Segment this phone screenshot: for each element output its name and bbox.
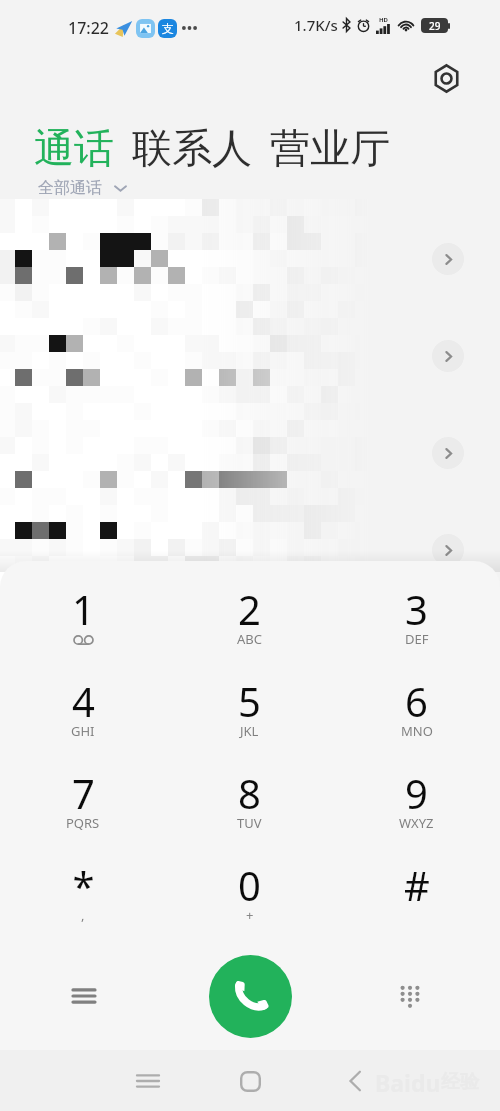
button[interactable]: Menu: [48, 960, 120, 1032]
staticText: ,: [81, 906, 85, 924]
staticText: 3: [405, 582, 428, 636]
staticText: 0: [238, 858, 261, 912]
button[interactable]: 营业厅: [270, 123, 390, 173]
button[interactable]: #: [333, 850, 500, 942]
staticText: HD: [379, 16, 388, 24]
button[interactable]: Call details: [0, 210, 500, 307]
button[interactable]: 联系人: [132, 123, 252, 173]
button[interactable]: Back: [325, 1051, 385, 1111]
staticText: 8: [238, 766, 261, 820]
staticText: 9: [405, 766, 428, 820]
staticText: 5: [238, 674, 261, 728]
staticText: 支: [162, 21, 174, 36]
button[interactable]: 5: [166, 666, 333, 758]
staticText: +: [246, 906, 254, 924]
button[interactable]: 2: [166, 574, 333, 666]
button[interactable]: Home: [220, 1051, 280, 1111]
staticText: 联系人: [132, 123, 252, 173]
staticText: 6: [405, 674, 428, 728]
staticText: 17:22: [68, 17, 109, 39]
staticText: GHI: [71, 722, 95, 740]
staticText: JKL: [240, 722, 259, 740]
button[interactable]: Call details: [0, 501, 500, 598]
button[interactable]: 1: [0, 574, 166, 666]
staticText: DEF: [405, 630, 429, 648]
staticText: WXYZ: [399, 814, 434, 832]
button[interactable]: Settings: [428, 60, 464, 96]
button[interactable]: 8: [166, 758, 333, 850]
button[interactable]: 9: [333, 758, 500, 850]
staticText: MNO: [401, 722, 433, 740]
staticText: 1.7K/s: [294, 15, 338, 35]
staticText: ABC: [237, 630, 262, 648]
button[interactable]: 3: [333, 574, 500, 666]
staticText: PQRS: [66, 814, 100, 832]
staticText: TUV: [237, 814, 262, 832]
staticText: 全部通话: [38, 178, 102, 198]
staticText: *: [72, 858, 95, 912]
button[interactable]: 4: [0, 666, 166, 758]
staticText: 7: [72, 766, 95, 820]
staticText: 2: [238, 582, 261, 636]
button[interactable]: 7: [0, 758, 166, 850]
button[interactable]: Keypad: [374, 960, 446, 1032]
button[interactable]: Call details: [0, 307, 500, 404]
button[interactable]: Call details: [0, 404, 500, 501]
staticText: 4: [72, 674, 95, 728]
staticText: 通话: [34, 123, 114, 173]
button[interactable]: 6: [333, 666, 500, 758]
staticText: 营业厅: [270, 123, 390, 173]
staticText: 1: [72, 582, 95, 636]
staticText: #: [404, 858, 430, 912]
button[interactable]: *: [0, 850, 166, 942]
button[interactable]: 0: [166, 850, 333, 942]
button[interactable]: 通话: [34, 123, 114, 173]
button[interactable]: Recents: [118, 1051, 178, 1111]
button[interactable]: Call: [209, 955, 292, 1038]
staticText: 29: [429, 19, 441, 33]
button[interactable]: 全部通话: [38, 178, 126, 198]
